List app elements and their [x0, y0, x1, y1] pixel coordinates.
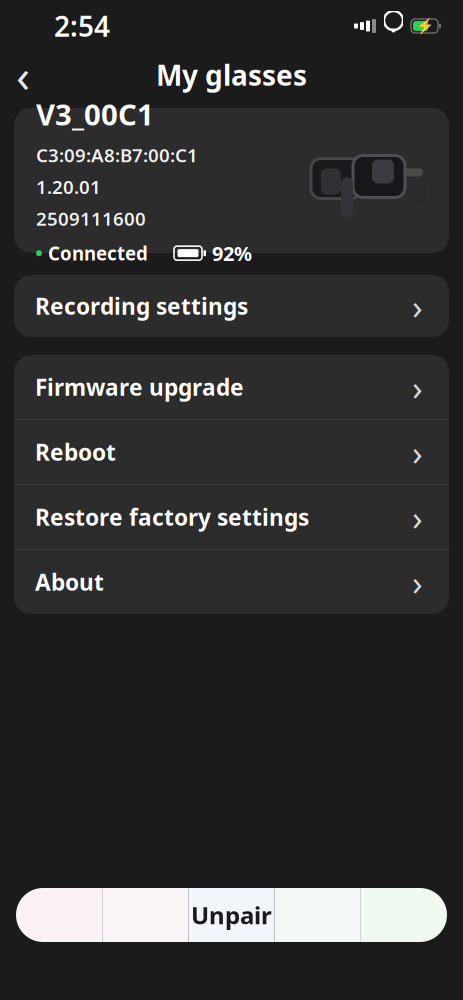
staticText: ⚡	[415, 18, 433, 34]
button[interactable]: Restore factory settings	[14, 485, 449, 549]
staticText: Recording settings	[35, 291, 248, 321]
staticText: Connected	[48, 241, 148, 266]
staticText: My glasses	[156, 56, 307, 94]
staticText: 2509111600	[36, 206, 146, 231]
button[interactable]: About	[14, 550, 449, 614]
staticText: ›	[412, 364, 423, 410]
button[interactable]: Back	[0, 53, 46, 97]
staticText: Unpair	[191, 899, 272, 931]
staticText: C3:09:A8:B7:00:C1	[36, 142, 198, 167]
staticText: Reboot	[35, 437, 116, 467]
staticText: 2:54	[54, 7, 110, 45]
staticText: ›	[412, 559, 423, 605]
staticText: 92%	[212, 240, 252, 266]
button[interactable]: Recording settings	[14, 275, 449, 337]
button[interactable]: Reboot	[14, 420, 449, 484]
staticText: ›	[412, 494, 423, 540]
staticText: ‹	[16, 45, 30, 105]
staticText: Firmware upgrade	[35, 372, 244, 402]
staticText: About	[35, 567, 104, 597]
staticText: ›	[412, 283, 423, 329]
staticText: ›	[412, 429, 423, 475]
staticText: Restore factory settings	[35, 502, 309, 532]
button[interactable]: Firmware upgrade	[14, 355, 449, 419]
button[interactable]: Unpair	[16, 888, 447, 942]
staticText: 1.20.01	[36, 174, 101, 199]
staticText: V3_00C1	[36, 95, 154, 134]
